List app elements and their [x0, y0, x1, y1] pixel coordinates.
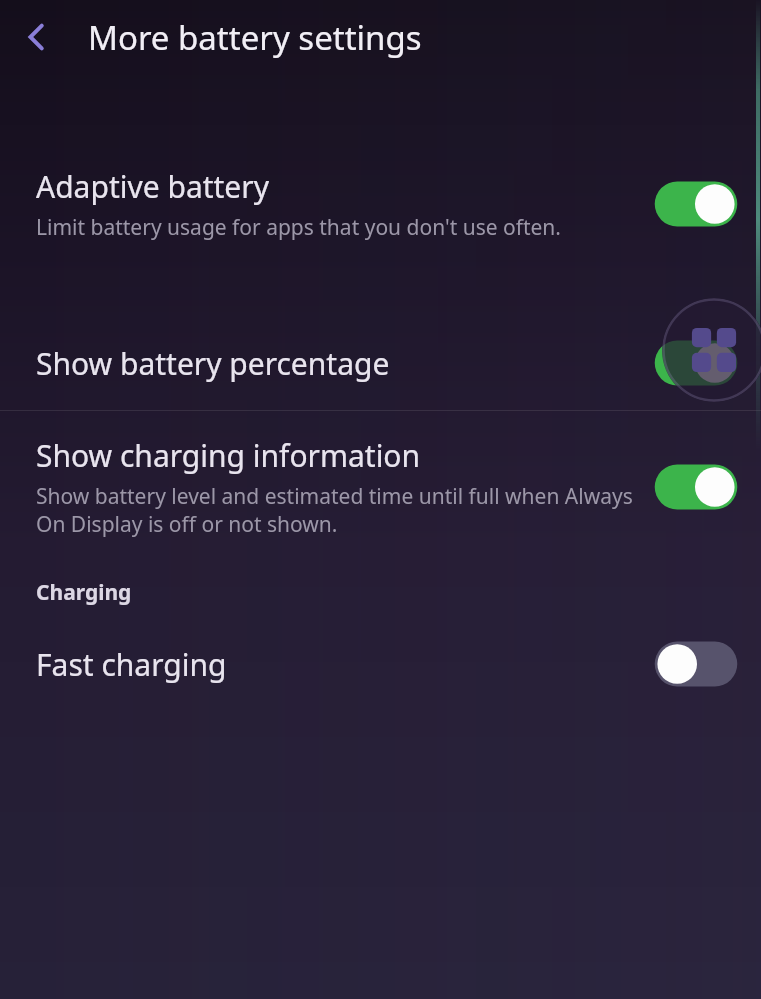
staticText: More battery settings [88, 15, 422, 60]
button[interactable]: Show battery percentage [0, 338, 761, 388]
button[interactable]: Show charging information [0, 435, 761, 538]
button[interactable]: Fast charging [653, 639, 739, 689]
button[interactable]: Adaptive battery [653, 179, 739, 229]
staticText: Limit battery usage for apps that you do… [36, 213, 561, 242]
button[interactable]: Back [0, 0, 74, 74]
staticText: Show battery percentage [36, 343, 390, 384]
button[interactable]: Show battery percentage [653, 338, 739, 388]
button[interactable]: Show charging information [653, 462, 739, 512]
staticText: Adaptive battery [36, 166, 269, 207]
staticText: Show charging information [36, 435, 421, 476]
staticText: Show battery level and estimated time un… [36, 482, 639, 538]
button[interactable]: Open apps panel [662, 298, 761, 402]
button[interactable]: Fast charging [0, 639, 761, 689]
staticText: Fast charging [36, 644, 227, 685]
staticText: Charging [36, 578, 132, 607]
button[interactable]: Adaptive battery [0, 166, 761, 242]
